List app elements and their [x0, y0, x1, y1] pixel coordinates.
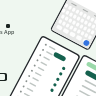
button[interactable]: Get it on Google Play: [0, 73, 7, 81]
staticText: s App: [0, 28, 15, 35]
button[interactable]: App icon: [6, 24, 10, 28]
